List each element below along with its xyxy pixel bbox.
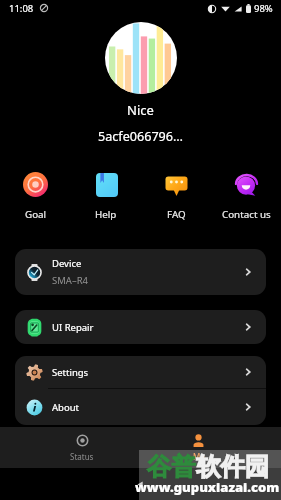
- button[interactable]: Device: [15, 249, 266, 295]
- staticText: FAQ: [167, 208, 186, 221]
- staticText: 98%: [254, 2, 273, 15]
- staticText: Contact us: [222, 208, 271, 221]
- staticText: About: [52, 401, 79, 414]
- button[interactable]: UI Repair: [15, 310, 266, 344]
- button[interactable]: About: [15, 389, 266, 425]
- staticText: Device: [52, 257, 82, 270]
- button[interactable]: Me: [140, 427, 257, 468]
- staticText: 5acfe066796…: [0, 128, 281, 145]
- button[interactable]: Settings: [15, 356, 266, 388]
- button[interactable]: FAQ: [141, 168, 211, 225]
- staticText: 软件园: [196, 452, 270, 483]
- staticText: Help: [95, 208, 117, 221]
- other: Back: [135, 479, 146, 490]
- staticText: Settings: [52, 366, 89, 379]
- staticText: Me: [193, 451, 205, 462]
- staticText: Goal: [25, 208, 47, 221]
- staticText: www.gupuxiazai.com: [135, 478, 280, 496]
- staticText: 11:08: [9, 2, 34, 15]
- button[interactable]: Contact us: [211, 168, 281, 225]
- staticText: Status: [70, 451, 94, 462]
- button[interactable]: Goal: [0, 168, 71, 225]
- button[interactable]: Help: [71, 168, 141, 225]
- staticText: Nice: [0, 101, 281, 119]
- staticText: UI Repair: [52, 321, 94, 334]
- staticText: SMA–R4: [52, 274, 88, 287]
- button[interactable]: Status: [24, 427, 140, 468]
- staticText: 谷普: [147, 452, 196, 483]
